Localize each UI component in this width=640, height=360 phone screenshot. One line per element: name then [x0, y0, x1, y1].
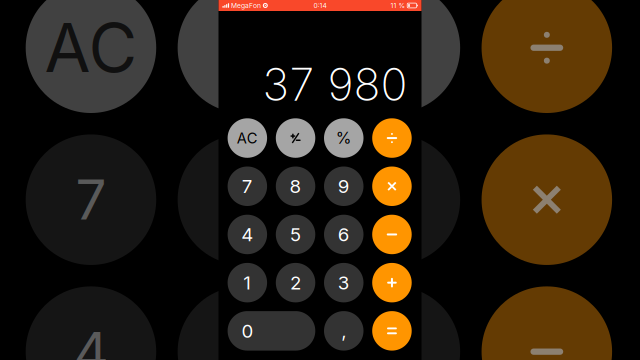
button[interactable]: 6 — [324, 215, 363, 254]
button[interactable]: 7 — [228, 166, 267, 206]
button[interactable]: Minus — [372, 215, 412, 254]
button[interactable]: Multiply — [372, 166, 412, 206]
staticText: 9 — [338, 175, 350, 198]
staticText: 7 — [75, 167, 106, 233]
staticText: 5 — [290, 223, 301, 246]
staticText: MegaFon — [231, 1, 261, 10]
button[interactable]: , — [324, 311, 363, 351]
staticText: 4 — [73, 319, 108, 360]
button[interactable]: Plus minus — [276, 118, 315, 158]
staticText: 37 980 — [262, 57, 407, 111]
button[interactable]: Divide — [372, 118, 412, 158]
staticText: 0 — [242, 320, 254, 342]
button[interactable]: Plus — [372, 263, 412, 302]
staticText: , — [341, 320, 346, 342]
button[interactable]: 0 — [228, 311, 315, 351]
staticText: 7 — [242, 175, 253, 198]
staticText: 0:14 — [313, 1, 326, 10]
button[interactable]: 9 — [324, 166, 363, 206]
staticText: 3 — [338, 271, 350, 294]
staticText: 2 — [290, 271, 301, 294]
staticText: AC — [44, 7, 137, 88]
button[interactable]: 2 — [276, 263, 315, 302]
button[interactable]: 1 — [228, 263, 267, 302]
staticText: 8 — [290, 175, 302, 198]
staticText: 11 % — [390, 1, 405, 10]
staticText: 4 — [241, 223, 253, 246]
staticText: % — [336, 128, 352, 148]
button[interactable]: 5 — [276, 215, 315, 254]
button[interactable]: 3 — [324, 263, 363, 302]
staticText: 6 — [338, 223, 350, 246]
button[interactable]: Equals — [372, 311, 412, 351]
button[interactable]: 4 — [228, 215, 267, 254]
button[interactable]: % — [324, 118, 363, 158]
staticText: 1 — [243, 271, 251, 294]
button[interactable]: AC — [228, 118, 267, 158]
staticText: AC — [237, 129, 258, 147]
button[interactable]: 8 — [276, 166, 315, 206]
